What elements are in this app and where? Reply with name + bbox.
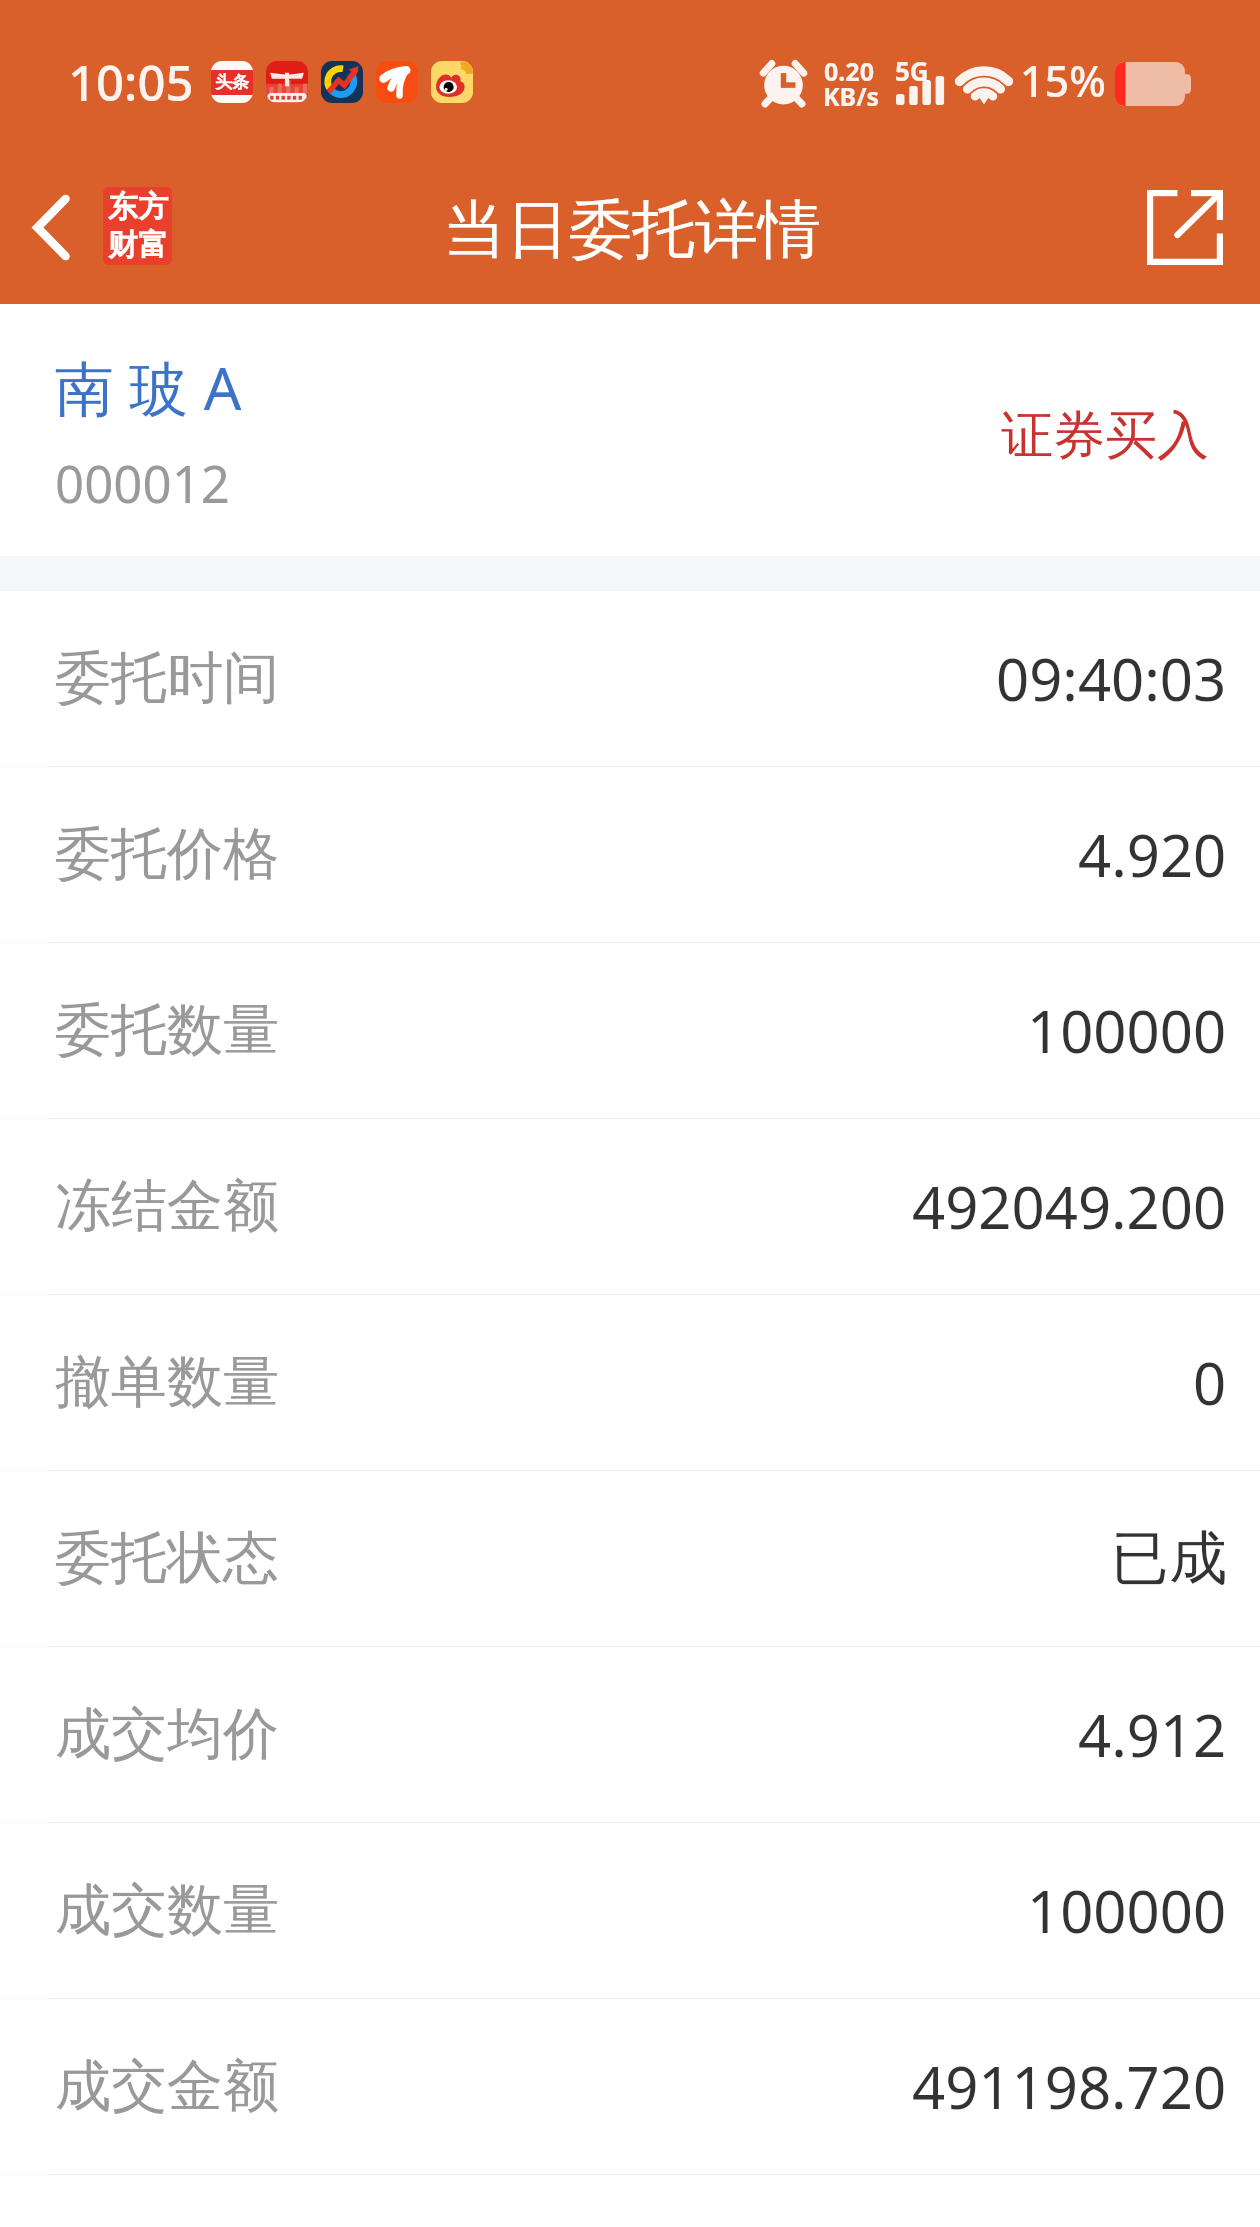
button[interactable]: 委托状态	[0, 1471, 1260, 1646]
staticText: 成交均价	[55, 1699, 279, 1770]
staticText: 当日委托详情	[443, 190, 821, 269]
staticText: 5G	[895, 53, 929, 88]
staticText: 委托价格	[55, 819, 279, 890]
button[interactable]: 成交均价	[0, 1647, 1260, 1822]
staticText: 4.912	[1078, 1695, 1227, 1774]
staticText: 委托数量	[55, 995, 279, 1066]
staticText: 000012	[55, 448, 231, 517]
staticText: 财富	[108, 226, 168, 264]
button[interactable]: 撤单数量	[0, 1295, 1260, 1470]
staticText: 证券买入	[1001, 403, 1209, 469]
button[interactable]: Back	[8, 172, 94, 282]
staticText: 100000	[1027, 991, 1227, 1070]
button[interactable]: Share	[1135, 177, 1235, 277]
staticText: 南 玻 A	[55, 347, 242, 428]
staticText: 0.20	[824, 54, 874, 88]
button[interactable]: 委托时间	[0, 591, 1260, 766]
staticText: 0	[1193, 1343, 1227, 1422]
staticText: 冻结金额	[55, 1171, 279, 1242]
staticText: 头条	[215, 72, 249, 93]
button[interactable]: 委托价格	[0, 767, 1260, 942]
button[interactable]: 成交金额	[0, 1999, 1260, 2174]
staticText: 成交数量	[55, 1875, 279, 1946]
staticText: 委托时间	[55, 643, 279, 714]
staticText: 撤单数量	[55, 1347, 279, 1418]
staticText: 已成	[1111, 1522, 1227, 1595]
button[interactable]: 委托数量	[0, 943, 1260, 1118]
staticText: 15%	[1020, 51, 1106, 110]
staticText: 委托状态	[55, 1523, 279, 1594]
staticText: 4.920	[1078, 815, 1227, 894]
staticText: 100000	[1027, 1871, 1227, 1950]
staticText: 491198.720	[912, 2047, 1227, 2126]
button[interactable]: 成交数量	[0, 1823, 1260, 1998]
staticText: 492049.200	[912, 1167, 1227, 1246]
button[interactable]: 冻结金额	[0, 1119, 1260, 1294]
staticText: 成交金额	[55, 2051, 279, 2122]
staticText: 东方	[108, 188, 168, 226]
staticText: 10:05	[68, 49, 194, 116]
staticText: KB/s	[823, 79, 880, 113]
button[interactable]: 南 玻 A	[0, 304, 1260, 556]
staticText: 09:40:03	[996, 639, 1227, 718]
